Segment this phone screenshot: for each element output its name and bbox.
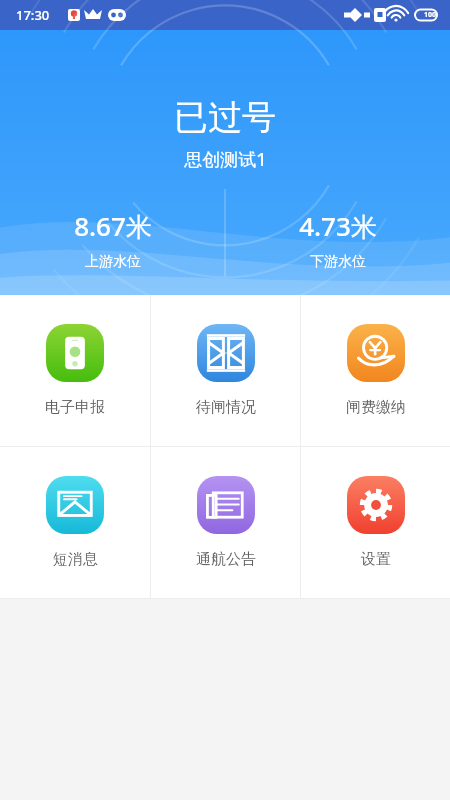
staticText: 17:30 (16, 6, 50, 24)
staticText: 通航公告 (196, 550, 256, 569)
button[interactable]: 待闸情况 (151, 295, 300, 446)
button[interactable]: 电子申报 (0, 295, 150, 446)
staticText: 100 (424, 10, 437, 20)
staticText: 已过号 (174, 96, 276, 139)
staticText: 待闸情况 (196, 398, 256, 417)
staticText: 上游水位 (85, 253, 141, 271)
staticText: 闸费缴纳 (346, 398, 406, 417)
button[interactable]: 短消息 (0, 447, 150, 598)
button[interactable]: 设置 (301, 447, 450, 598)
staticText: 思创测试1 (184, 147, 267, 172)
other: 待闸情况 (197, 324, 255, 382)
other: 设置 (347, 476, 405, 534)
staticText: 8.67米 (74, 208, 152, 244)
other: 通航公告 (197, 476, 255, 534)
other: 电子申报 (46, 324, 104, 382)
staticText: 设置 (361, 550, 391, 569)
staticText: 短消息 (53, 550, 98, 569)
staticText: 4.73米 (299, 208, 377, 244)
staticText: 下游水位 (310, 253, 366, 271)
staticText: 电子申报 (45, 398, 105, 417)
button[interactable]: 通航公告 (151, 447, 300, 598)
other: 闸费缴纳 (347, 324, 405, 382)
button[interactable]: 闸费缴纳 (301, 295, 450, 446)
other: 短消息 (46, 476, 104, 534)
